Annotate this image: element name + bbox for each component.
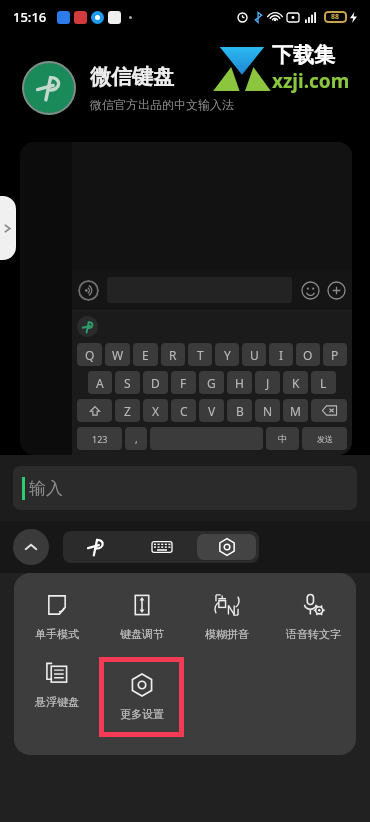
button[interactable]: Collapse <box>13 529 49 565</box>
button[interactable]: M <box>283 399 308 422</box>
button[interactable]: More <box>327 281 346 300</box>
staticText: L <box>320 375 327 391</box>
button[interactable]: Voice input <box>78 280 99 301</box>
button[interactable]: V <box>199 399 224 422</box>
button[interactable]: J <box>255 371 280 394</box>
button[interactable]: B <box>227 399 252 422</box>
staticText: O <box>303 347 313 363</box>
button[interactable]: U <box>242 343 266 366</box>
staticText: K <box>292 375 300 391</box>
button[interactable]: X <box>143 399 168 422</box>
button[interactable]: Emoji <box>301 281 320 300</box>
button[interactable]: F <box>171 371 196 394</box>
staticText: W <box>112 347 124 363</box>
staticText: 语音转文字 <box>286 627 341 641</box>
staticText: 悬浮键盘 <box>35 695 79 709</box>
button[interactable]: Z <box>115 399 140 422</box>
staticText: , <box>135 432 138 446</box>
staticText: 88 <box>331 12 340 22</box>
staticText: M <box>290 403 301 419</box>
staticText: F <box>180 375 187 391</box>
button[interactable]: 模糊拼音 <box>184 589 270 645</box>
staticText: R <box>169 347 177 363</box>
button[interactable]: D <box>143 371 168 394</box>
button[interactable]: I <box>269 343 293 366</box>
button[interactable]: K <box>283 371 308 394</box>
button[interactable]: H <box>227 371 252 394</box>
button[interactable]: R <box>161 343 185 366</box>
staticText: 更多设置 <box>120 707 164 721</box>
button[interactable]: comma <box>125 427 147 450</box>
staticText: C <box>180 403 188 419</box>
button[interactable]: WeChat keyboard <box>63 531 129 563</box>
button[interactable]: O <box>296 343 320 366</box>
staticText: V <box>208 403 216 419</box>
button[interactable]: 悬浮键盘 <box>14 657 99 713</box>
staticText: A <box>96 375 104 391</box>
button[interactable]: Expand panel <box>0 196 16 260</box>
staticText: 下载集 <box>272 42 335 68</box>
staticText: 键盘调节 <box>120 627 164 641</box>
button[interactable]: A <box>88 371 112 394</box>
staticText: E <box>142 347 149 363</box>
button[interactable]: Settings <box>197 534 256 560</box>
button[interactable]: 语音转文字 <box>270 589 356 645</box>
staticText: G <box>207 375 216 391</box>
staticText: P <box>331 347 339 363</box>
button[interactable]: Keyboard <box>129 531 194 563</box>
button[interactable]: S <box>115 371 140 394</box>
staticText: Q <box>85 347 95 363</box>
button[interactable]: 输入 <box>13 466 357 510</box>
button[interactable]: Y <box>215 343 239 366</box>
button[interactable]: 键盘调节 <box>99 589 184 645</box>
button[interactable]: Language <box>266 427 299 450</box>
staticText: Z <box>124 403 131 419</box>
button[interactable]: G <box>199 371 224 394</box>
staticText: S <box>124 375 131 391</box>
button[interactable]: 单手模式 <box>14 589 99 645</box>
staticText: H <box>235 375 244 391</box>
staticText: 中 <box>278 433 287 444</box>
button[interactable]: Shift <box>77 399 112 422</box>
staticText: I <box>279 347 284 363</box>
button[interactable]: N <box>255 399 280 422</box>
staticText: 发送 <box>317 434 333 444</box>
staticText: T <box>197 347 204 363</box>
staticText: B <box>236 403 244 419</box>
button[interactable]: Backspace <box>311 399 347 422</box>
staticText: xzji.com <box>272 68 350 94</box>
button[interactable]: Keyboard logo <box>77 316 98 337</box>
button[interactable]: T <box>188 343 212 366</box>
staticText: Y <box>224 347 231 363</box>
button[interactable]: Q <box>77 343 102 366</box>
staticText: N <box>263 403 273 419</box>
staticText: D <box>151 375 160 391</box>
button[interactable]: W <box>105 343 130 366</box>
staticText: J <box>266 375 270 391</box>
staticText: U <box>250 347 259 363</box>
staticText: 15:16 <box>13 8 47 26</box>
button[interactable]: C <box>171 399 196 422</box>
staticText: 输入 <box>29 478 63 499</box>
staticText: 微信官方出品的中文输入法 <box>90 97 234 112</box>
staticText: 单手模式 <box>35 627 79 641</box>
staticText: 微信键盘 <box>90 64 174 90</box>
staticText: 模糊拼音 <box>205 627 249 641</box>
button[interactable]: L <box>311 371 336 394</box>
button[interactable]: 123 <box>77 427 122 450</box>
button[interactable]: E <box>133 343 158 366</box>
staticText: 123 <box>92 433 108 445</box>
button[interactable]: P <box>323 343 347 366</box>
staticText: X <box>152 403 160 419</box>
button[interactable]: 更多设置 <box>99 657 184 737</box>
button[interactable]: Send <box>302 427 347 450</box>
